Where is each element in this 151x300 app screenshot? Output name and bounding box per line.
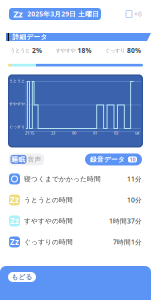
staticText: うとうと — [10, 47, 30, 54]
button[interactable]: Zz — [0, 231, 151, 252]
staticText: 寝つくまでかかった時間 — [24, 175, 101, 183]
staticText: ×6 — [134, 10, 142, 18]
staticText: 7時間1分 — [113, 237, 142, 246]
staticText: 10 — [129, 156, 135, 163]
staticText: ぐっすり — [9, 124, 25, 129]
staticText: すやすやの時間 — [24, 217, 73, 225]
staticText: すやすや — [55, 47, 75, 54]
staticText: もどる — [11, 273, 32, 281]
staticText: 2% — [30, 46, 42, 55]
staticText: 1時間37分 — [109, 216, 142, 225]
staticText: Zz — [10, 216, 19, 226]
staticText: Zz — [10, 237, 19, 247]
button[interactable]: 音声 — [26, 155, 42, 164]
button[interactable]: Zz — [0, 210, 151, 231]
button[interactable]: Zz — [0, 189, 151, 210]
staticText: 詳細データ — [12, 33, 47, 41]
staticText: 音声 — [27, 155, 41, 164]
staticText: うとうとの時間 — [24, 196, 73, 204]
staticText: Zz — [10, 195, 19, 205]
button[interactable]: Page count — [126, 8, 142, 20]
staticText: 録音データ — [90, 155, 125, 164]
button[interactable]: Zz — [9, 8, 101, 20]
staticText: 80% — [125, 46, 141, 55]
button[interactable]: 録音データ — [85, 153, 142, 165]
button[interactable]: 睡眠 — [10, 155, 26, 164]
staticText: 01 — [93, 130, 97, 136]
staticText: 23 — [51, 130, 55, 136]
staticText: すやすや — [9, 101, 25, 106]
staticText: Zz — [13, 8, 23, 20]
staticText: うとうと — [9, 78, 25, 83]
staticText: 11分 — [127, 174, 142, 183]
staticText: ぐっすりの時間 — [24, 238, 73, 246]
button[interactable]: もどる — [8, 272, 36, 282]
staticText: 2025年3月29日 土曜日 — [27, 10, 99, 18]
staticText: ぐっすり — [105, 47, 125, 54]
staticText: 10分 — [127, 195, 142, 204]
staticText: 04 — [135, 130, 139, 136]
staticText: 00 — [72, 130, 76, 136]
staticText: 睡眠 — [11, 155, 25, 164]
staticText: 21:15 — [25, 130, 34, 136]
staticText: 18% — [75, 46, 91, 55]
button[interactable]: 寝つくまでかかった時間 — [0, 168, 151, 189]
staticText: 03 — [114, 130, 118, 136]
